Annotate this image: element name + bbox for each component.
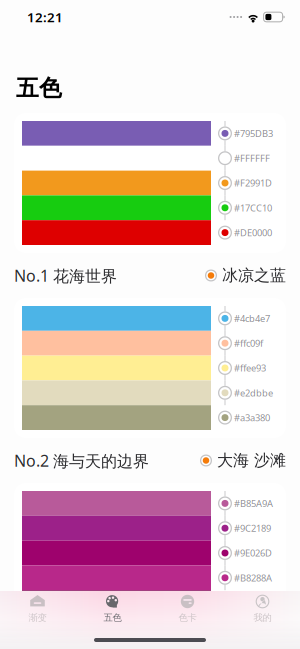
staticText: #e2dbbe: [234, 387, 273, 399]
staticText: No.1 花海世界: [14, 265, 117, 286]
staticText: #FFFFFF: [234, 152, 270, 164]
button[interactable]: 渐变: [0, 594, 75, 628]
button[interactable]: 我的: [225, 594, 300, 628]
staticText: 五色: [16, 74, 62, 102]
staticText: 渐变: [28, 612, 46, 623]
staticText: #a3a380: [234, 411, 270, 424]
staticText: #9E026D: [234, 547, 272, 559]
staticText: #F2991D: [234, 177, 272, 189]
staticText: 12:21: [27, 8, 63, 26]
staticText: #17CC10: [234, 202, 272, 214]
staticText: 大海 沙滩: [217, 451, 286, 470]
staticText: #ffc09f: [234, 337, 263, 349]
staticText: 色卡: [178, 612, 196, 623]
staticText: 我的: [253, 612, 271, 623]
staticText: 冰凉之蓝: [222, 266, 286, 285]
staticText: #795DB3: [234, 127, 273, 140]
staticText: #DE0000: [234, 226, 272, 239]
staticText: #B8288A: [234, 572, 272, 584]
staticText: No.2 海与天的边界: [14, 450, 149, 471]
staticText: #B85A9A: [234, 497, 273, 510]
staticText: #9C2189: [234, 522, 271, 534]
staticText: #4cb4e7: [234, 312, 270, 325]
staticText: No.3 紫霞之夜: [14, 635, 117, 649]
staticText: 五色: [103, 612, 121, 623]
staticText: #ffee93: [234, 362, 266, 374]
button[interactable]: 色卡: [150, 594, 225, 628]
staticText: #8E1A66: [234, 596, 271, 609]
button[interactable]: 五色: [75, 594, 150, 628]
